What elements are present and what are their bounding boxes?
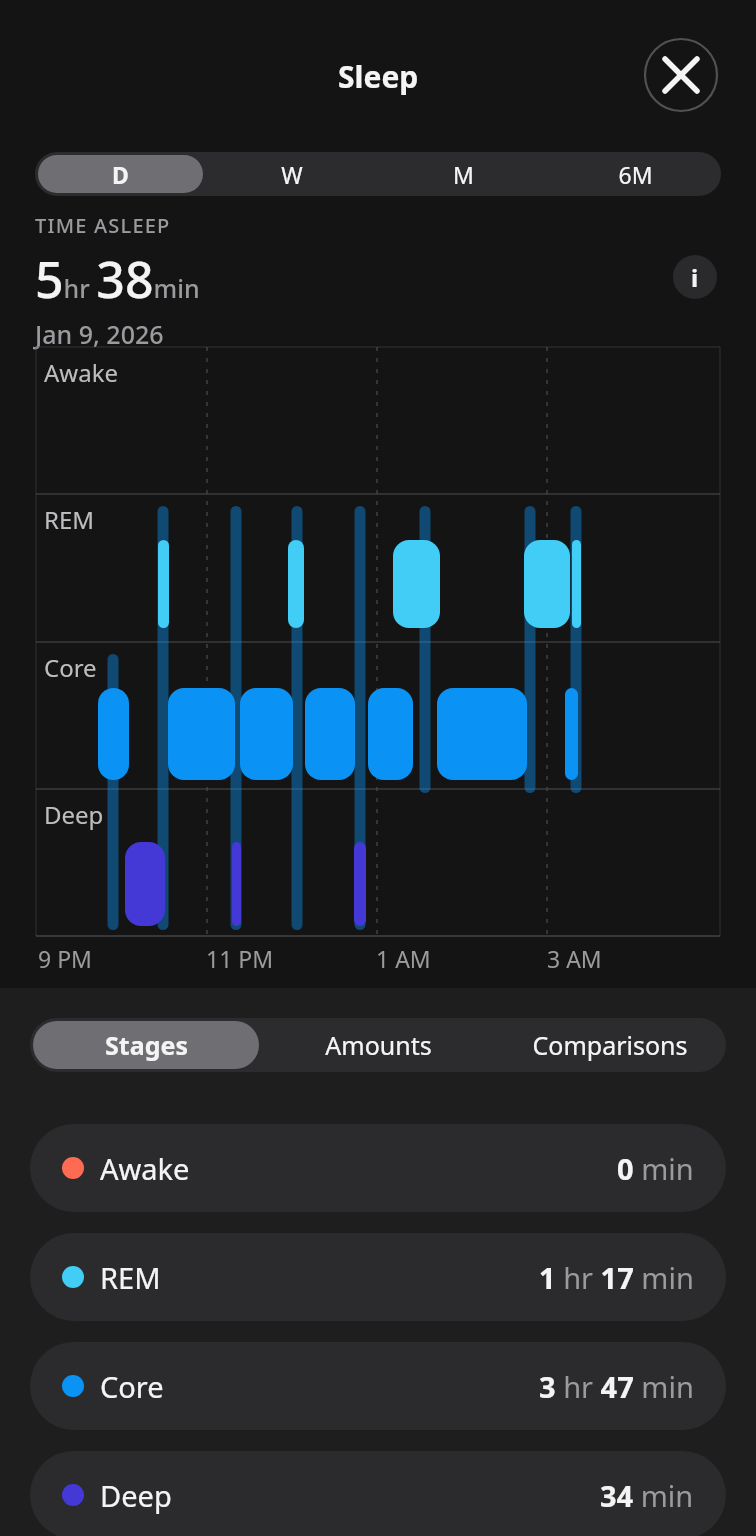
staticText: 6M	[618, 159, 653, 190]
staticText: 34 min	[600, 1476, 694, 1515]
staticText: M	[453, 159, 474, 190]
staticText: 3 hr 47 min	[539, 1367, 694, 1406]
staticText: 3 AM	[547, 943, 602, 974]
staticText: REM	[44, 503, 95, 536]
staticText: 0 min	[617, 1149, 694, 1188]
staticText: Amounts	[325, 1028, 432, 1062]
button[interactable]: Awake	[30, 1124, 726, 1212]
staticText: 5hr 38min	[35, 245, 200, 313]
button[interactable]: Deep	[30, 1451, 726, 1536]
staticText: Core	[44, 651, 97, 684]
button[interactable]: W	[209, 155, 374, 193]
staticText: 1 AM	[376, 943, 431, 974]
staticText: TIME ASLEEP	[35, 212, 171, 239]
button[interactable]: Amounts	[265, 1021, 491, 1069]
staticText: W	[281, 159, 303, 190]
staticText: Core	[100, 1367, 164, 1406]
staticText: Sleep	[338, 56, 419, 97]
button[interactable]: D	[38, 155, 203, 193]
button[interactable]: M	[380, 155, 546, 193]
staticText: 11 PM	[206, 943, 274, 974]
staticText: Deep	[44, 798, 104, 831]
button[interactable]: 6M	[552, 155, 718, 193]
staticText: D	[112, 159, 129, 190]
button[interactable]: Info	[673, 255, 717, 299]
staticText: i	[691, 261, 699, 294]
staticText: Comparisons	[532, 1028, 688, 1062]
staticText: Stages	[105, 1028, 188, 1062]
staticText: Awake	[44, 356, 119, 389]
button[interactable]: REM	[30, 1233, 726, 1321]
staticText: Jan 9, 2026	[35, 317, 164, 351]
button[interactable]: Stages	[33, 1021, 259, 1069]
staticText: 1 hr 17 min	[539, 1258, 694, 1297]
button[interactable]: Close	[643, 37, 719, 113]
staticText: Awake	[100, 1149, 190, 1188]
button[interactable]: Core	[30, 1342, 726, 1430]
staticText: REM	[100, 1258, 161, 1297]
staticText: Deep	[100, 1476, 172, 1515]
staticText: 9 PM	[38, 943, 92, 974]
button[interactable]: Comparisons	[497, 1021, 723, 1069]
